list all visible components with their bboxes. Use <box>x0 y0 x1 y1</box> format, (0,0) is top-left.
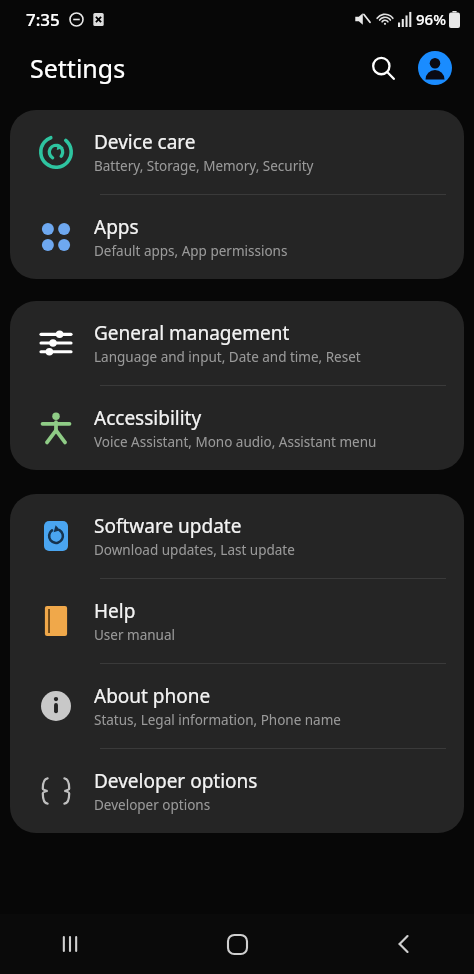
button[interactable]: Developer options <box>10 749 464 833</box>
button[interactable]: Accessibility <box>10 386 464 470</box>
button[interactable]: Account <box>412 45 458 91</box>
button[interactable]: Search <box>360 45 406 91</box>
staticText: Software update <box>94 513 242 539</box>
staticText: Voice Assistant, Mono audio, Assistant m… <box>94 433 377 451</box>
button[interactable]: Help <box>10 579 464 663</box>
button[interactable]: Apps <box>10 195 464 279</box>
staticText: Default apps, App permissions <box>94 242 288 260</box>
staticText: Battery, Storage, Memory, Security <box>94 157 314 175</box>
staticText: Language and input, Date and time, Reset <box>94 348 361 366</box>
staticText: 7:35 <box>26 8 60 31</box>
staticText: Device care <box>94 129 196 155</box>
button[interactable]: Device care <box>10 110 464 194</box>
staticText: Accessibility <box>94 405 202 431</box>
button[interactable]: Home <box>209 916 265 972</box>
button[interactable]: General management <box>10 301 464 385</box>
staticText: 96% <box>416 9 446 29</box>
staticText: Download updates, Last update <box>94 541 295 559</box>
staticText: Help <box>94 598 136 624</box>
button[interactable]: Software update <box>10 494 464 578</box>
staticText: Apps <box>94 214 139 240</box>
staticText: About phone <box>94 683 211 709</box>
staticText: General management <box>94 320 290 346</box>
staticText: User manual <box>94 626 175 644</box>
button[interactable]: About phone <box>10 664 464 748</box>
staticText: Developer options <box>94 768 258 794</box>
staticText: Developer options <box>94 796 211 814</box>
staticText: Settings <box>30 51 126 85</box>
staticText: Status, Legal information, Phone name <box>94 711 341 729</box>
button[interactable]: Recents <box>42 916 98 972</box>
button[interactable]: Back <box>376 916 432 972</box>
